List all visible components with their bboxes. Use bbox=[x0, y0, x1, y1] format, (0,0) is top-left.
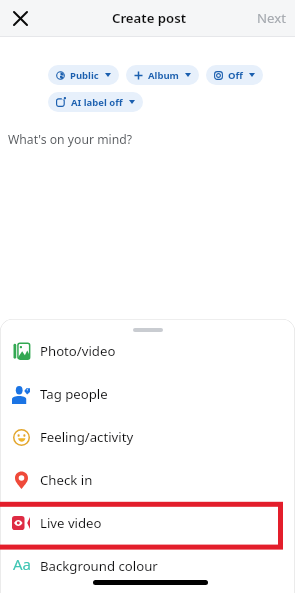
staticText: Photo/video bbox=[40, 342, 116, 360]
button[interactable]: Check in bbox=[0, 458, 295, 501]
staticText: Public bbox=[70, 69, 99, 82]
button[interactable]: Next bbox=[248, 3, 295, 33]
staticText: Off bbox=[228, 69, 243, 82]
button[interactable]: Album bbox=[126, 65, 199, 85]
staticText: Create post bbox=[112, 9, 187, 27]
staticText: Feeling/activity bbox=[40, 428, 134, 446]
button[interactable]: Aa bbox=[0, 544, 295, 587]
button[interactable]: AI label off bbox=[48, 92, 143, 112]
staticText: Tag people bbox=[40, 385, 108, 403]
button[interactable]: Feeling/activity bbox=[0, 415, 295, 458]
staticText: Aa bbox=[13, 554, 31, 572]
staticText: Album bbox=[148, 69, 179, 82]
staticText: What's on your mind? bbox=[8, 131, 132, 148]
staticText: Live video bbox=[40, 514, 102, 532]
button[interactable]: Close bbox=[6, 4, 34, 32]
button[interactable]: Tag people bbox=[0, 372, 295, 415]
staticText: Next bbox=[257, 9, 286, 27]
button[interactable]: Off bbox=[206, 65, 263, 85]
button[interactable]: Public bbox=[48, 65, 119, 85]
button[interactable]: Photo/video bbox=[0, 329, 295, 372]
staticText: Check in bbox=[40, 471, 93, 489]
staticText: Background colour bbox=[40, 557, 158, 575]
button[interactable]: Live video bbox=[0, 501, 295, 544]
staticText: AI label off bbox=[71, 96, 123, 109]
